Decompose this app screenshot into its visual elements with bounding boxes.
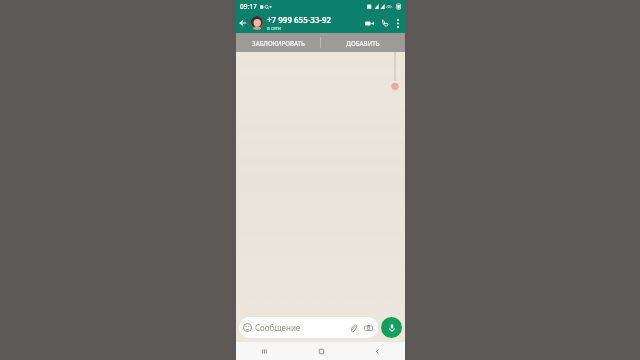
button[interactable]: Attach [347, 322, 359, 334]
button[interactable]: Record voice message [381, 317, 402, 338]
button[interactable]: Home [293, 342, 349, 360]
button[interactable]: ЗАБЛОКИРОВАТЬ [236, 33, 320, 52]
staticText: +7 999 655-33-92 [267, 14, 332, 25]
staticText: ЗАБЛОКИРОВАТЬ [252, 39, 305, 47]
staticText: ДОБАВИТЬ [346, 39, 380, 47]
button[interactable]: Back [236, 13, 250, 33]
staticText: Сообщение [255, 322, 347, 333]
staticText: 09:17 [240, 2, 257, 11]
button[interactable]: Recent apps [236, 342, 293, 360]
button[interactable]: Сообщение [239, 317, 378, 338]
staticText: в сети [267, 25, 282, 32]
button[interactable]: Contact photo [250, 16, 264, 30]
button[interactable]: Back [349, 342, 405, 360]
button[interactable]: +7 999 655-33-92 [267, 14, 361, 32]
button[interactable]: More options [392, 13, 404, 33]
button[interactable]: ДОБАВИТЬ [321, 33, 405, 52]
button[interactable]: Video call [361, 13, 377, 33]
button[interactable]: Call [377, 13, 392, 33]
button[interactable]: Camera [362, 322, 374, 334]
